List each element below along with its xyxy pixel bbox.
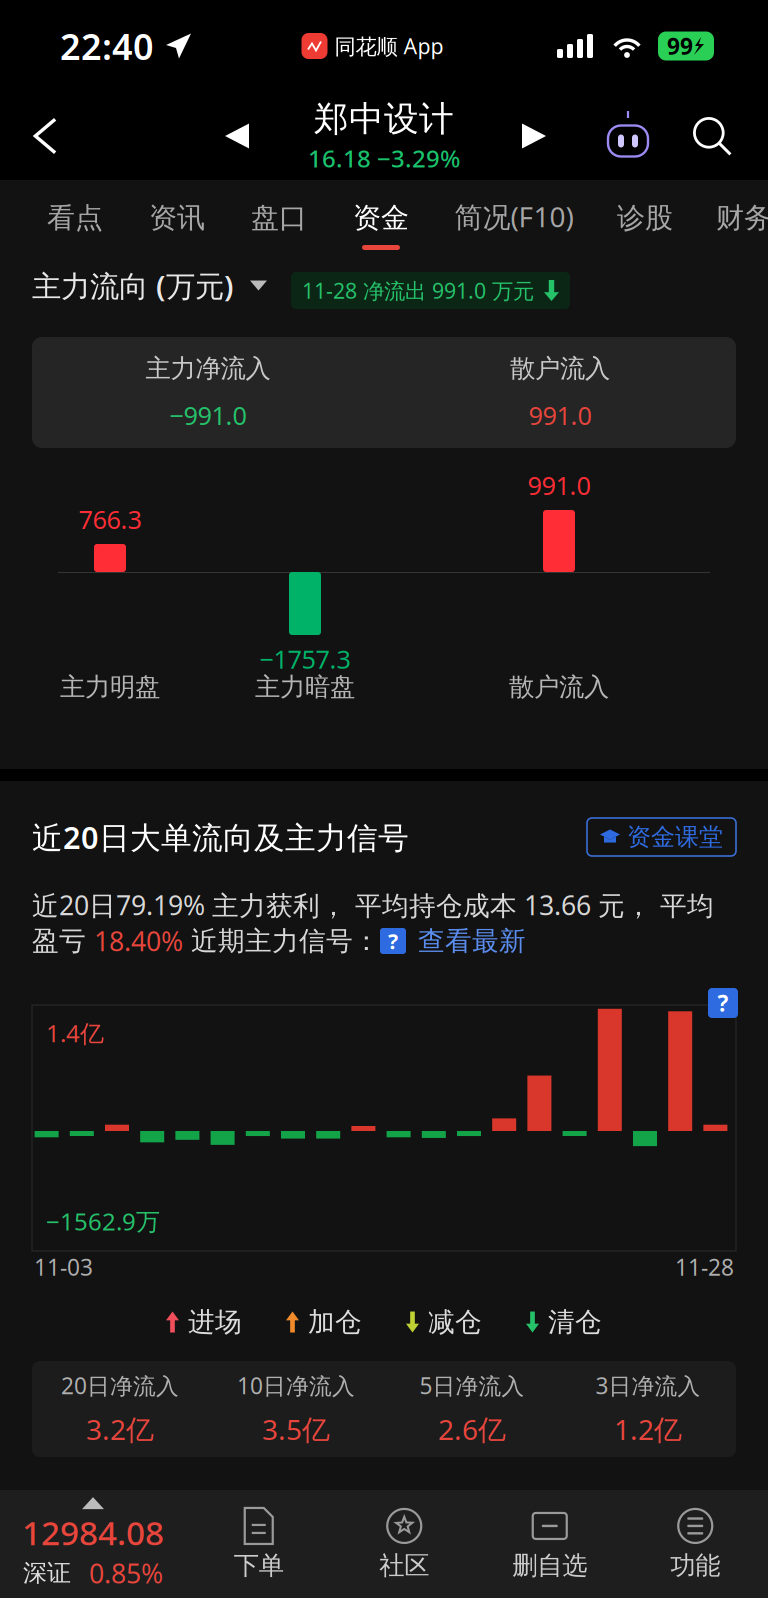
staticText: −1757.3 bbox=[259, 642, 350, 676]
staticText: 资讯 bbox=[149, 201, 205, 235]
staticText: 3.5亿 bbox=[262, 1410, 330, 1448]
button[interactable]: 资金课堂 bbox=[587, 818, 736, 856]
staticText: 近20日大单流向及主力信号 bbox=[32, 817, 409, 857]
button[interactable]: Remove from watchlist bbox=[477, 1490, 622, 1598]
button[interactable]: Place order bbox=[186, 1490, 331, 1598]
button[interactable]: Next stock bbox=[490, 92, 578, 180]
staticText: 11-28 净流出 991.0 万元 bbox=[302, 276, 534, 305]
staticText: 删自选 bbox=[512, 1550, 587, 1581]
staticText: 22:40 bbox=[60, 22, 154, 70]
button[interactable]: AI assistant bbox=[584, 92, 672, 180]
staticText: 11-03 bbox=[34, 1252, 93, 1282]
staticText: 郑中设计 bbox=[314, 98, 454, 140]
staticText: 盘口 bbox=[251, 201, 307, 235]
staticText: 下单 bbox=[234, 1550, 284, 1581]
staticText: ? bbox=[717, 988, 728, 1018]
button[interactable]: 资讯 bbox=[126, 180, 228, 258]
staticText: 社区 bbox=[379, 1550, 429, 1581]
staticText: 深证 bbox=[23, 1558, 71, 1588]
button[interactable]: Search bbox=[669, 92, 755, 180]
staticText: 0.85% bbox=[89, 1555, 163, 1591]
staticText: 资金课堂 bbox=[627, 822, 723, 852]
staticText: 看点 bbox=[47, 201, 103, 235]
staticText: 散户流入 bbox=[510, 353, 610, 384]
staticText: ? bbox=[388, 927, 398, 955]
staticText: 主力暗盘 bbox=[255, 671, 355, 702]
staticText: 同花顺 App bbox=[334, 32, 443, 60]
staticText: 加仓 bbox=[308, 1306, 362, 1338]
staticText: 查看最新 bbox=[418, 925, 526, 957]
staticText: 主力明盘 bbox=[60, 671, 160, 702]
staticText: 近期主力信号： bbox=[183, 925, 380, 957]
button[interactable]: 深证 index bbox=[0, 1490, 186, 1598]
staticText: 3.2亿 bbox=[86, 1410, 154, 1448]
staticText: 财务 bbox=[716, 201, 768, 235]
staticText: 近20日79.19% 主力获利， 平均持仓成本 13.66 元， 平均 bbox=[32, 887, 714, 923]
staticText: 991.0 bbox=[527, 468, 590, 502]
staticText: 5日净流入 bbox=[419, 1370, 524, 1400]
staticText: 99 bbox=[667, 31, 693, 61]
button[interactable]: 诊股 bbox=[596, 180, 694, 258]
button[interactable]: Previous stock bbox=[193, 92, 281, 180]
staticText: 766.3 bbox=[78, 502, 141, 536]
staticText: 12984.08 bbox=[22, 1510, 164, 1554]
staticText: −991.0 bbox=[169, 398, 246, 432]
button[interactable]: Community bbox=[331, 1490, 477, 1598]
button[interactable]: Back bbox=[0, 92, 92, 180]
button[interactable]: 财务 bbox=[694, 180, 768, 258]
staticText: 1.4亿 bbox=[46, 1017, 104, 1049]
button[interactable]: 看点 bbox=[24, 180, 126, 258]
button[interactable]: 简况(F10) bbox=[432, 180, 596, 258]
staticText: 散户流入 bbox=[509, 671, 609, 702]
staticText: 减仓 bbox=[428, 1306, 482, 1338]
button[interactable]: 查看最新 bbox=[406, 925, 526, 957]
staticText: −1562.9万 bbox=[46, 1205, 160, 1237]
staticText: 1.2亿 bbox=[614, 1410, 682, 1448]
button[interactable]: 资金 bbox=[330, 180, 432, 258]
button[interactable]: Chart help bbox=[708, 988, 738, 1018]
staticText: 盈亏 bbox=[32, 925, 94, 957]
button[interactable]: Functions bbox=[622, 1490, 768, 1598]
staticText: 主力流向 (万元) bbox=[32, 266, 234, 305]
staticText: 20日净流入 bbox=[61, 1370, 179, 1400]
staticText: 资金 bbox=[353, 201, 409, 235]
staticText: 诊股 bbox=[617, 201, 673, 235]
staticText: 11-28 bbox=[675, 1252, 734, 1282]
staticText: 10日净流入 bbox=[237, 1370, 355, 1400]
staticText: 清仓 bbox=[548, 1306, 602, 1338]
staticText: 16.18 −3.29% bbox=[308, 142, 460, 174]
staticText: 主力净流入 bbox=[145, 353, 270, 384]
staticText: 3日净流入 bbox=[595, 1370, 700, 1400]
staticText: 18.40% bbox=[94, 923, 183, 959]
staticText: 简况(F10) bbox=[454, 198, 573, 235]
staticText: 进场 bbox=[188, 1306, 242, 1338]
button[interactable]: Signal help bbox=[380, 928, 406, 954]
staticText: 2.6亿 bbox=[438, 1410, 506, 1448]
button[interactable]: 盘口 bbox=[228, 180, 330, 258]
staticText: 功能 bbox=[670, 1550, 720, 1581]
staticText: 991.0 bbox=[528, 398, 591, 432]
